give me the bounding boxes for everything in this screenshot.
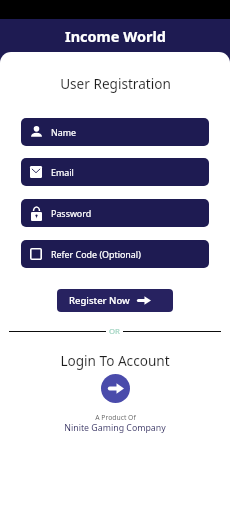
staticText: OR [109, 326, 120, 336]
staticText: Income World [65, 26, 166, 46]
staticText: Refer Code (Optional) [51, 248, 141, 260]
staticText: Ninite Gaming Company [64, 422, 166, 434]
button[interactable]: Login To Account [101, 374, 130, 403]
staticText: Name [51, 126, 77, 138]
button[interactable]: Refer Code (Optional) [21, 240, 209, 268]
staticText: Password [51, 207, 92, 219]
button[interactable]: Email [21, 158, 209, 186]
staticText: A Product Of [95, 413, 136, 422]
staticText: Register Now [69, 294, 130, 307]
button[interactable]: Register Now [57, 289, 173, 312]
staticText: Email [51, 166, 74, 178]
staticText: User Registration [60, 74, 171, 93]
staticText: Login To Account [60, 351, 170, 370]
button[interactable]: Password [21, 199, 209, 227]
button[interactable]: Name [21, 118, 209, 146]
